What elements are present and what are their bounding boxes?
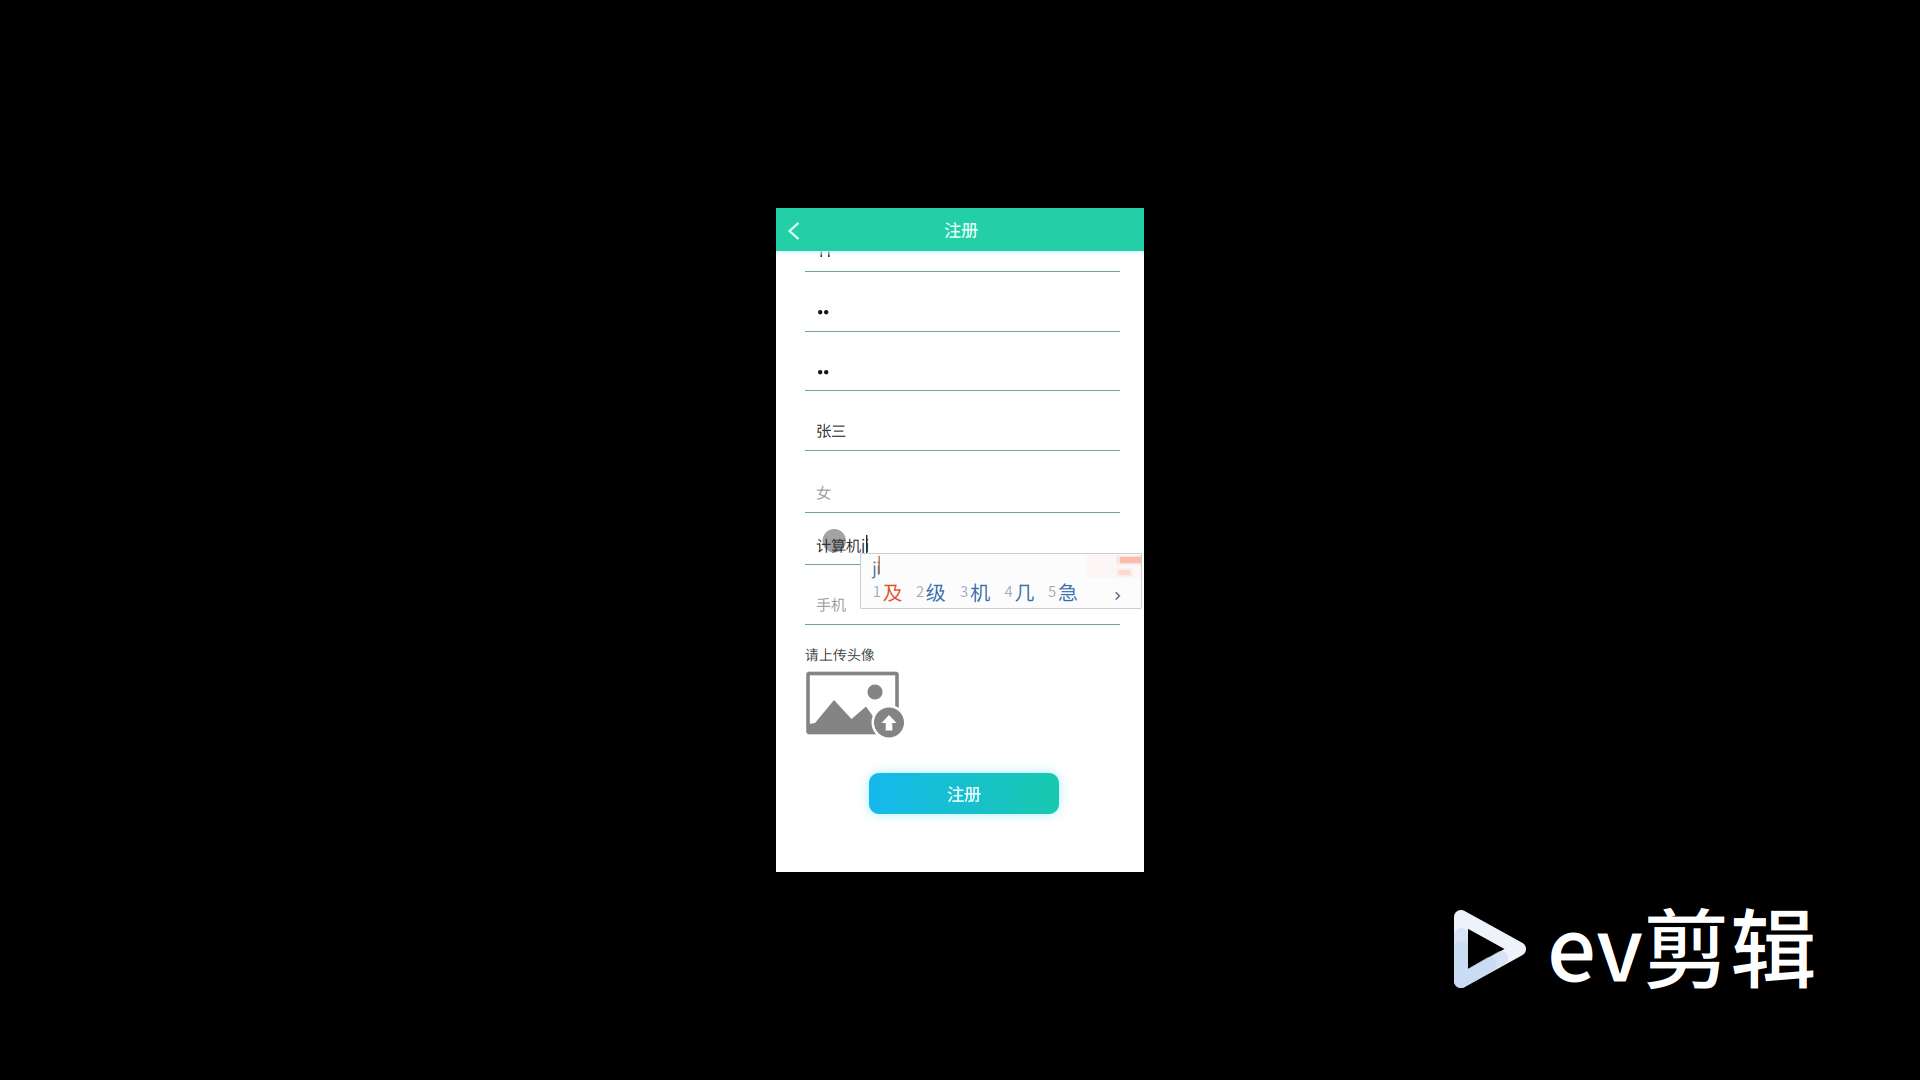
button[interactable]: 几 <box>1004 575 1036 597</box>
button[interactable]: 及 <box>873 575 905 597</box>
staticText: 急 <box>1058 577 1078 606</box>
staticText: 张三 <box>816 419 846 441</box>
staticText: 计算机ji <box>816 534 869 556</box>
staticText: 1 <box>873 580 881 601</box>
staticText: 女 <box>816 481 831 503</box>
staticText: ev剪辑 <box>1547 881 1817 1006</box>
button[interactable]: 计算机ji <box>805 513 1120 564</box>
button[interactable]: 级 <box>916 575 948 597</box>
staticText: 注册 <box>947 781 981 806</box>
button[interactable]: 返回 <box>788 221 812 241</box>
button[interactable]: 女 <box>805 451 1120 512</box>
staticText: 4 <box>1004 580 1012 601</box>
staticText: 5 <box>1048 580 1056 601</box>
staticText: 注册 <box>944 217 978 242</box>
button[interactable]: 输入框 <box>805 332 1120 390</box>
staticText: 3 <box>960 580 968 601</box>
button[interactable]: 上传头像 <box>806 672 912 744</box>
staticText: ji <box>872 556 880 579</box>
staticText: 级 <box>926 577 946 606</box>
staticText: 机 <box>970 577 990 606</box>
button[interactable]: 输入框 <box>805 272 1120 331</box>
button[interactable]: 急 <box>1048 575 1080 597</box>
staticText: 2 <box>916 580 924 601</box>
button[interactable]: 更多候选词 <box>1100 581 1126 603</box>
staticText: 几 <box>1014 577 1034 606</box>
button[interactable]: 张三 <box>805 391 1120 450</box>
button[interactable]: 账号 <box>805 235 1120 271</box>
button[interactable]: 注册 <box>869 773 1059 814</box>
staticText: 及 <box>882 577 902 606</box>
staticText: 手机 <box>816 593 846 615</box>
button[interactable]: 机 <box>960 575 992 597</box>
button[interactable]: 手机 <box>805 565 1120 624</box>
staticText: 请上传头像 <box>805 644 875 664</box>
